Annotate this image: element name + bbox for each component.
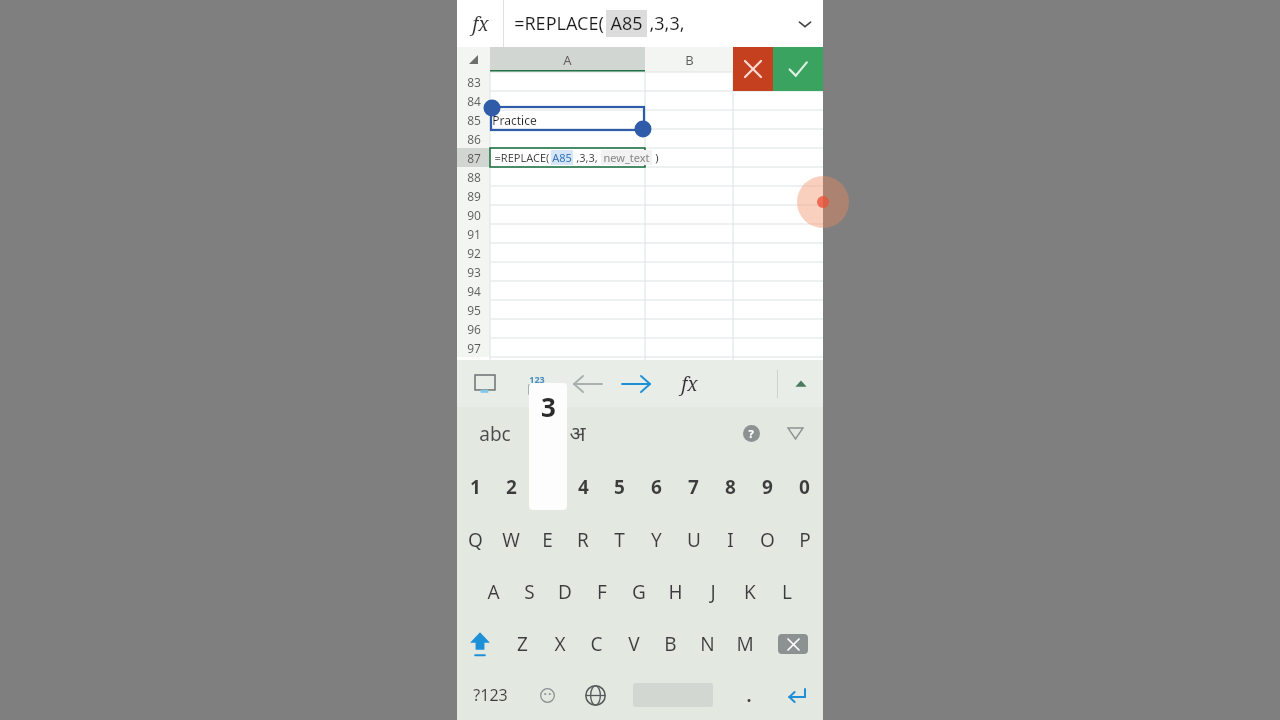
button[interactable]: 87 — [457, 148, 490, 167]
button[interactable]: L — [768, 566, 805, 618]
button[interactable]: O — [749, 513, 786, 566]
button[interactable]: C — [578, 618, 615, 670]
button[interactable]: 96 — [457, 319, 490, 338]
button[interactable]: N — [689, 618, 726, 670]
button[interactable]: 92 — [457, 243, 490, 262]
button[interactable]: 9 — [749, 460, 786, 513]
button[interactable]: K — [731, 566, 768, 618]
button[interactable]: 93 — [457, 262, 490, 281]
button[interactable]: ?123 — [457, 670, 523, 720]
staticText: F — [597, 579, 607, 605]
button[interactable]: 8 — [712, 460, 749, 513]
button[interactable]: Q — [457, 513, 493, 566]
staticText: 88 — [467, 169, 481, 185]
button[interactable]: 88 — [457, 167, 490, 186]
button[interactable]: Emoji — [523, 670, 571, 720]
staticText: Practice — [492, 112, 537, 127]
button[interactable]: 85 — [457, 110, 490, 129]
button[interactable]: B — [645, 47, 733, 72]
button[interactable]: 84 — [457, 91, 490, 110]
button[interactable]: Enter — [771, 670, 823, 720]
button[interactable]: . — [727, 670, 771, 720]
staticText: 5 — [614, 474, 625, 500]
button[interactable]: 95 — [457, 300, 490, 319]
button[interactable]: P — [786, 513, 823, 566]
button[interactable]: X — [541, 618, 578, 670]
button[interactable]: Hide keyboard — [457, 360, 512, 407]
button[interactable]: Expand — [778, 360, 823, 407]
staticText: R — [577, 527, 589, 553]
staticText: ) — [652, 150, 659, 165]
button[interactable]: D — [547, 566, 583, 618]
staticText: 84 — [467, 93, 481, 109]
staticText: abc — [479, 421, 511, 447]
staticText: ,3,3, — [573, 150, 598, 165]
staticText: 96 — [467, 321, 481, 337]
staticText: S — [524, 579, 535, 605]
button[interactable]: E — [529, 513, 565, 566]
button[interactable]: 89 — [457, 186, 490, 205]
button[interactable]: 91 — [457, 224, 490, 243]
button[interactable]: B — [652, 618, 689, 670]
button[interactable]: Previous — [562, 360, 612, 407]
button[interactable]: More options — [773, 407, 817, 460]
button[interactable]: S — [511, 566, 547, 618]
button[interactable]: Change language — [571, 670, 619, 720]
button[interactable]: Enter — [773, 47, 823, 91]
button[interactable]: Help — [729, 407, 773, 460]
button[interactable]: Expand formula bar — [787, 0, 823, 47]
button[interactable]: abc — [457, 407, 532, 460]
button[interactable]: A — [490, 47, 645, 72]
button[interactable]: 97 — [457, 338, 490, 357]
button[interactable]: 7 — [675, 460, 712, 513]
button[interactable]: fx — [457, 0, 503, 47]
staticText: H — [668, 579, 683, 605]
button[interactable]: V — [615, 618, 652, 670]
button[interactable]: 4 — [565, 460, 601, 513]
button[interactable]: M — [726, 618, 763, 670]
staticText: =REPLACE( — [493, 150, 551, 165]
button[interactable]: G — [620, 566, 657, 618]
button[interactable]: R — [565, 513, 601, 566]
button[interactable]: 3 — [529, 460, 565, 513]
button[interactable]: 2 — [493, 460, 529, 513]
button[interactable]: W — [493, 513, 529, 566]
button[interactable]: Next — [612, 360, 662, 407]
button[interactable]: J — [694, 566, 731, 618]
staticText: O — [760, 527, 775, 553]
button[interactable]: Z — [503, 618, 541, 670]
staticText: 91 — [467, 226, 481, 242]
button[interactable]: 86 — [457, 129, 490, 148]
button[interactable]: U — [675, 513, 712, 566]
staticText: V — [628, 631, 640, 657]
staticText: 1 — [470, 474, 481, 500]
button[interactable]: Backspace — [763, 618, 823, 670]
button[interactable]: 83 — [457, 72, 490, 91]
button[interactable]: 0 — [786, 460, 823, 513]
staticText: B — [685, 51, 694, 69]
staticText: new_text — [603, 150, 650, 165]
button[interactable]: अ — [532, 407, 622, 460]
button[interactable]: A — [475, 566, 511, 618]
button[interactable]: 94 — [457, 281, 490, 300]
button[interactable]: Number format — [512, 360, 562, 407]
button[interactable]: Functions — [662, 360, 717, 407]
button[interactable]: 1 — [457, 460, 493, 513]
staticText: L — [782, 579, 792, 605]
button[interactable]: F — [583, 566, 620, 618]
button[interactable]: Y — [638, 513, 675, 566]
button[interactable]: 6 — [638, 460, 675, 513]
button[interactable]: 5 — [601, 460, 638, 513]
button[interactable]: 90 — [457, 205, 490, 224]
staticText: 83 — [467, 74, 481, 90]
button[interactable]: Cancel — [733, 47, 773, 91]
staticText: fx — [472, 11, 489, 37]
button[interactable]: Shift — [457, 618, 503, 670]
button[interactable]: H — [657, 566, 694, 618]
button[interactable]: I — [712, 513, 749, 566]
button[interactable]: T — [601, 513, 638, 566]
staticText: अ — [569, 419, 586, 448]
staticText: ? — [748, 426, 754, 441]
staticText: 4 — [578, 474, 589, 500]
